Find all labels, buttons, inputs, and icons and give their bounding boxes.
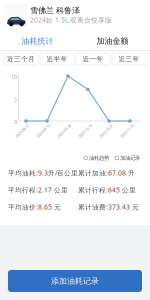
staticText: 2023-08-31 [13,128,31,134]
button[interactable]: 油耗统计 [0,33,75,49]
staticText: 累计油费:373.43 元 [78,203,139,211]
staticText: 近一年 [82,55,103,63]
staticText: 2023-10-15 [76,128,94,134]
button[interactable]: 加油金额 [75,33,150,49]
staticText: 2023-10-31 [97,128,115,134]
button[interactable]: 近三个月 [4,53,38,65]
staticText: 累计行程:645 公里 [78,186,136,194]
staticText: 5 [14,96,17,103]
staticText: 0 [14,118,17,126]
staticText: 加油记录 [120,155,140,161]
staticText: 2023-11-15 [118,128,136,134]
staticText: 平均油价:8.65 元 [8,203,61,211]
button[interactable]: 添加油耗记录 [8,270,142,292]
button[interactable]: 近一年 [76,53,110,65]
staticText: 近三个月 [7,55,35,63]
staticText: 平均油耗:9.3升/百公里 [8,169,78,177]
staticText: 累计加油:67.08 升 [78,169,135,177]
staticText: 平均行程:2.17 公里 [8,186,68,194]
staticText: 2023-09-30 [55,128,73,134]
button[interactable]: 近半年 [40,53,74,65]
staticText: 雪佛兰 科鲁泽 [30,6,80,15]
staticText: 油耗趋势 [89,155,109,161]
staticText: 添加油耗记录 [51,276,99,286]
staticText: 近半年 [46,55,67,63]
staticText: 加油金额 [96,36,128,46]
staticText: 10 [11,73,17,81]
staticText: 油耗统计 [21,36,53,46]
staticText: 2023-09-15 [34,128,52,134]
button[interactable]: 近三年 [112,53,146,65]
staticText: 2024款 1.5L 双离合悦享版 [30,16,112,24]
staticText: 近三年 [118,55,139,63]
